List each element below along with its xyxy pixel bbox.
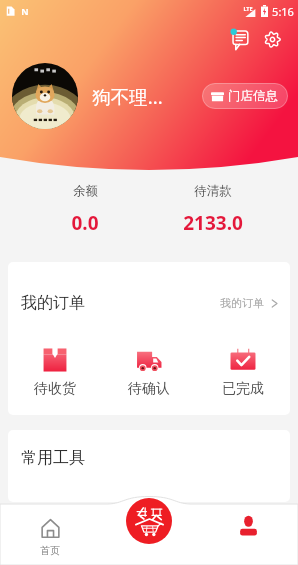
staticText: 5:16 (272, 4, 294, 19)
staticText: 已完成 (222, 380, 264, 398)
staticText: 常用工具 (21, 448, 85, 468)
staticText: 狗不理... (92, 84, 163, 109)
button[interactable]: 待确认 (102, 348, 196, 398)
staticText: 待确认 (128, 380, 170, 398)
staticText: 门店信息 (228, 88, 278, 104)
staticText: 首页 (40, 544, 60, 557)
staticText: 余额 (73, 183, 98, 199)
staticText: 我的订单 (220, 296, 264, 310)
button[interactable]: 首页 (0, 504, 100, 565)
staticText: 2133.0 (183, 210, 243, 236)
button[interactable]: Settings (257, 24, 287, 54)
button[interactable]: 待收货 (8, 348, 102, 398)
button[interactable]: Messages (224, 24, 254, 54)
button[interactable]: 门店信息 (202, 83, 288, 109)
button[interactable]: 余额 (21, 183, 149, 236)
staticText: N (21, 5, 29, 17)
button[interactable]: 我的订单 (8, 262, 290, 313)
staticText: 待收货 (34, 380, 76, 398)
staticText: 我的订单 (21, 293, 85, 313)
button[interactable]: Profile (199, 504, 298, 565)
button[interactable]: 待清款 (149, 183, 277, 236)
button[interactable]: Order (126, 498, 172, 544)
button[interactable]: 已完成 (196, 348, 290, 398)
staticText: 0.0 (71, 210, 99, 236)
staticText: 待清款 (194, 183, 232, 199)
staticText: LTE (243, 5, 253, 12)
